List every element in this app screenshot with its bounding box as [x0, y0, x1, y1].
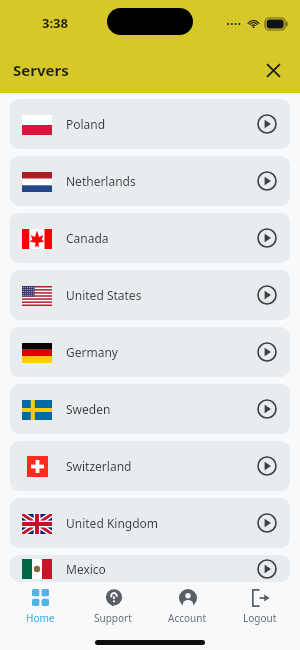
button[interactable]: Support — [80, 585, 146, 630]
other: Connect — [256, 455, 278, 477]
button[interactable]: Poland — [10, 99, 290, 149]
staticText: Logout — [243, 611, 277, 625]
other: Connect — [256, 170, 278, 192]
staticText: Home — [26, 611, 55, 625]
staticText: Support — [94, 611, 132, 625]
button[interactable]: United Kingdom — [10, 498, 290, 548]
button[interactable]: Germany — [10, 327, 290, 377]
button[interactable]: Switzerland — [10, 441, 290, 491]
other: Connect — [256, 341, 278, 363]
other: Connect — [256, 113, 278, 135]
staticText: Switzerland — [66, 458, 132, 474]
staticText: Germany — [66, 344, 118, 360]
staticText: 3:38 — [42, 14, 68, 32]
other: Connect — [256, 398, 278, 420]
button[interactable]: United States — [10, 270, 290, 320]
button[interactable]: Account — [154, 585, 220, 630]
staticText: Sweden — [66, 401, 111, 417]
staticText: Account — [168, 611, 207, 625]
staticText: United States — [66, 287, 142, 303]
other: Connect — [256, 512, 278, 534]
staticText: Canada — [66, 230, 109, 246]
button[interactable]: Logout — [227, 585, 293, 630]
button[interactable]: Mexico — [10, 555, 290, 582]
other: Connect — [256, 227, 278, 249]
other: Connect — [256, 558, 278, 580]
staticText: Mexico — [66, 561, 106, 577]
staticText: United Kingdom — [66, 515, 159, 531]
staticText: Netherlands — [66, 173, 136, 189]
staticText: Poland — [66, 116, 106, 132]
other: Connect — [256, 284, 278, 306]
button[interactable]: Home — [7, 585, 73, 630]
staticText: Servers — [13, 60, 69, 80]
button[interactable]: Netherlands — [10, 156, 290, 206]
button[interactable]: Close — [259, 56, 287, 84]
button[interactable]: Canada — [10, 213, 290, 263]
button[interactable]: Sweden — [10, 384, 290, 434]
